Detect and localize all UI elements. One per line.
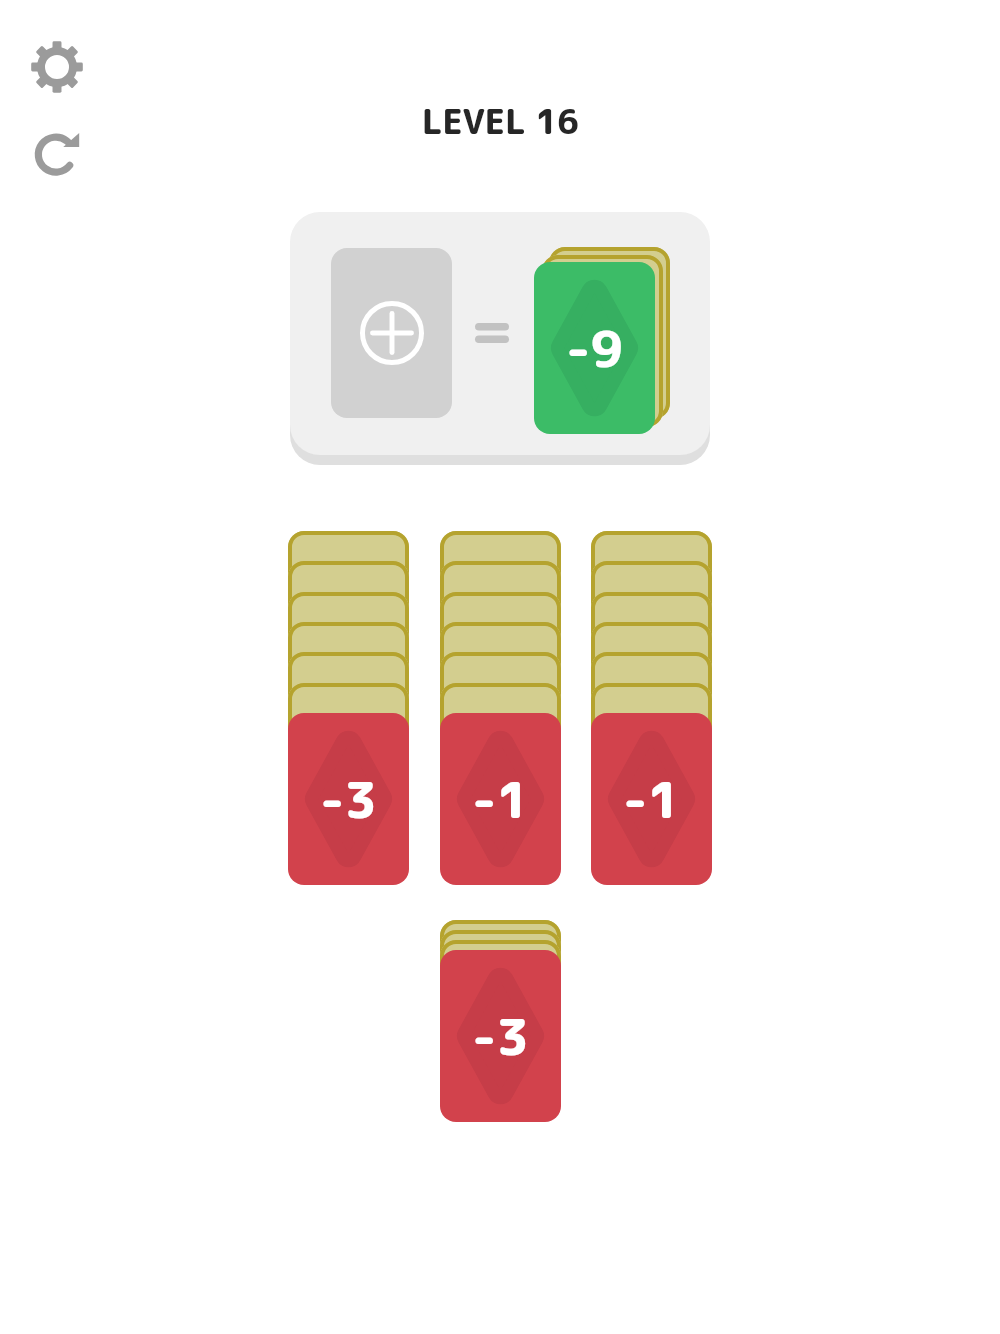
staticText: -3 [472, 1001, 529, 1071]
staticText: -9 [566, 313, 623, 383]
button[interactable]: Add a card [331, 248, 452, 418]
staticText: -1 [623, 764, 680, 834]
button[interactable]: Card stack -3 [288, 531, 409, 885]
button[interactable]: Card stack -3 [440, 920, 561, 1122]
button[interactable]: Card stack -9 [534, 247, 670, 434]
button[interactable]: Card stack -1 [440, 531, 561, 885]
button[interactable]: Restart level [24, 122, 90, 188]
button[interactable]: Card stack -1 [591, 531, 712, 885]
staticText: -1 [472, 764, 529, 834]
staticText: LEVEL 16 [422, 98, 579, 145]
button[interactable]: Settings [24, 34, 90, 100]
staticText: -3 [320, 764, 377, 834]
